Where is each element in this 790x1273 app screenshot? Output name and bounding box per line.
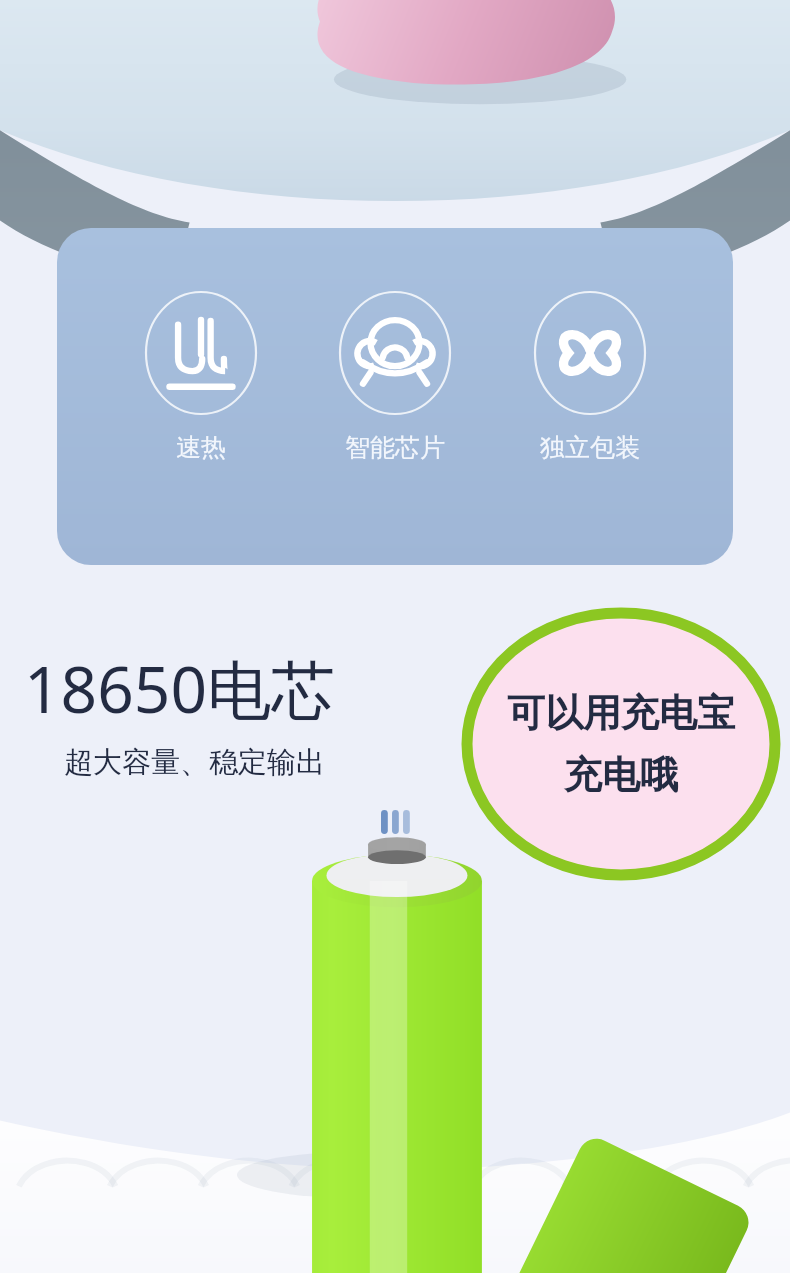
staticText: 速热 bbox=[176, 432, 226, 463]
staticText: 可以用充电宝 bbox=[507, 689, 735, 737]
staticText: 充电哦 bbox=[564, 751, 678, 799]
staticText: 智能芯片 bbox=[345, 432, 445, 463]
button[interactable]: 速热 bbox=[136, 290, 266, 463]
button[interactable]: 独立包装 bbox=[525, 290, 655, 463]
button[interactable]: 可以用充电宝充电哦 bbox=[462, 608, 780, 880]
staticText: 18650电芯 bbox=[24, 645, 336, 732]
button[interactable]: 智能芯片 bbox=[330, 290, 460, 463]
staticText: 独立包装 bbox=[540, 432, 640, 463]
staticText: 超大容量、稳定输出 bbox=[64, 744, 325, 781]
